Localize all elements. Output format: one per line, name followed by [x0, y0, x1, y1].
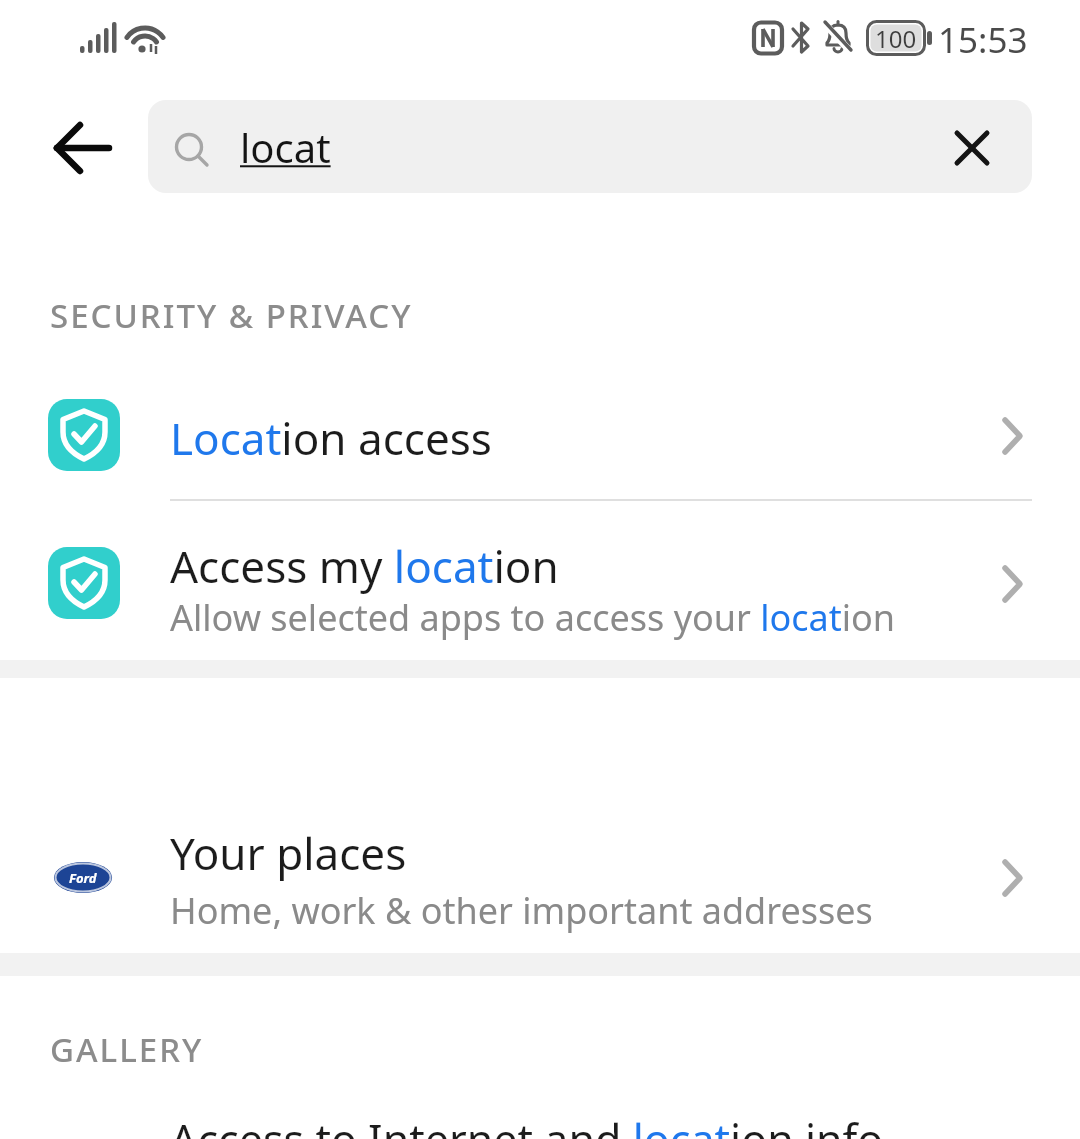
staticText: Access to Internet and location info: [170, 1110, 884, 1139]
staticText: GALLERY: [50, 1027, 204, 1072]
staticText: 100: [875, 22, 917, 55]
staticText: SECURITY & PRIVACY: [50, 293, 413, 338]
staticText: Access my location: [170, 536, 559, 596]
staticText: Location access: [170, 408, 492, 468]
button[interactable]: Location access: [0, 387, 1080, 484]
staticText: Allow selected apps to access your locat…: [170, 593, 896, 642]
button[interactable]: [937, 113, 1007, 183]
button[interactable]: locat: [148, 100, 1032, 193]
button[interactable]: Ford: [0, 820, 1080, 938]
staticText: Ford: [69, 869, 97, 887]
staticText: locat: [240, 120, 331, 174]
staticText: Your places: [170, 823, 407, 883]
staticText: 15:53: [938, 16, 1028, 64]
button[interactable]: [38, 113, 128, 183]
staticText: Home, work & other important addresses: [170, 886, 873, 935]
button[interactable]: Access my location: [0, 530, 1080, 648]
